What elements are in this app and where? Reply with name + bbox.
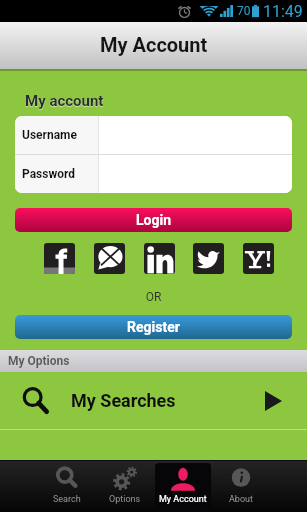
button[interactable]: Login bbox=[15, 208, 292, 232]
button[interactable]: Facebook bbox=[44, 243, 75, 274]
button[interactable] bbox=[99, 155, 292, 193]
staticText: My account bbox=[25, 92, 104, 110]
button[interactable]: Options bbox=[97, 463, 153, 512]
staticText: Register bbox=[127, 319, 180, 335]
button[interactable] bbox=[99, 116, 292, 154]
button[interactable]: Yahoo bbox=[243, 243, 274, 274]
staticText: About bbox=[229, 494, 253, 505]
staticText: My Account bbox=[100, 33, 208, 56]
staticText: Options bbox=[109, 494, 141, 505]
staticText: Login bbox=[136, 212, 172, 228]
staticText: Search bbox=[53, 494, 81, 505]
button[interactable]: My Searches bbox=[0, 372, 307, 429]
staticText: Password bbox=[22, 167, 76, 181]
button[interactable]: Twitter bbox=[193, 243, 224, 274]
staticText: OR bbox=[0, 290, 307, 304]
staticText: My Options bbox=[8, 354, 70, 368]
staticText: Username bbox=[22, 128, 77, 142]
button[interactable]: About bbox=[213, 463, 269, 512]
staticText: 11:49 bbox=[263, 2, 303, 21]
button[interactable]: My Account bbox=[155, 463, 211, 512]
staticText: 70 bbox=[237, 4, 251, 18]
staticText: My Searches bbox=[71, 390, 176, 411]
button[interactable]: Register bbox=[15, 315, 292, 339]
button[interactable]: LinkedIn bbox=[144, 243, 175, 274]
button[interactable]: Messenger bbox=[94, 243, 125, 274]
button[interactable]: Search bbox=[39, 463, 95, 512]
staticText: My Account bbox=[159, 494, 207, 505]
